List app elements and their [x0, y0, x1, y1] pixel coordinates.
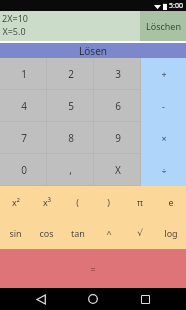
staticText: Lösen — [79, 44, 107, 58]
button[interactable]: 1 — [0, 58, 47, 90]
button[interactable]: Lösen — [0, 43, 186, 58]
button[interactable]: Recent apps — [134, 288, 156, 310]
button[interactable]: Löschen — [140, 11, 186, 41]
button[interactable]: ^ — [93, 217, 124, 249]
staticText: 5 — [68, 99, 74, 113]
staticText: x³ — [43, 196, 51, 208]
button[interactable]: 5 — [47, 90, 94, 122]
staticText: X — [115, 163, 121, 177]
button[interactable]: ( — [62, 186, 93, 217]
staticText: ^ — [106, 227, 112, 239]
staticText: = — [90, 263, 96, 275]
button[interactable]: 7 — [0, 122, 47, 154]
staticText: ) — [107, 196, 110, 208]
staticText: 3 — [115, 67, 121, 81]
staticText: ÷ — [161, 164, 167, 176]
staticText: 9 — [115, 131, 121, 145]
button[interactable]: Back — [30, 288, 52, 310]
button[interactable]: 4 — [0, 90, 47, 122]
staticText: 0 — [21, 163, 27, 177]
button[interactable]: π — [124, 186, 155, 217]
staticText: tan — [71, 227, 85, 239]
staticText: - — [162, 100, 165, 112]
staticText: e — [168, 196, 174, 208]
staticText: X=5.0 — [2, 25, 26, 37]
staticText: log — [164, 227, 178, 239]
button[interactable]: ) — [93, 186, 124, 217]
staticText: π — [137, 196, 143, 208]
button[interactable]: 2 — [47, 58, 94, 90]
staticText: 2 — [68, 67, 74, 81]
staticText: 4 — [21, 99, 27, 113]
button[interactable]: sin — [0, 217, 31, 249]
staticText: 2X=10 — [2, 12, 28, 24]
staticText: √ — [137, 228, 143, 238]
button[interactable]: x² — [0, 186, 31, 217]
button[interactable]: tan — [62, 217, 93, 249]
staticText: ( — [76, 196, 79, 208]
button[interactable]: x³ — [31, 186, 62, 217]
staticText: 6 — [115, 99, 121, 113]
button[interactable]: cos — [31, 217, 62, 249]
staticText: 7 — [21, 131, 27, 145]
button[interactable]: log — [155, 217, 186, 249]
button[interactable]: 6 — [94, 90, 141, 122]
staticText: 5:00 — [169, 1, 183, 11]
button[interactable]: 0 — [0, 154, 47, 186]
button[interactable]: X — [94, 154, 141, 186]
button[interactable]: + — [141, 58, 186, 90]
button[interactable]: - — [141, 90, 186, 122]
staticText: 8 — [68, 131, 74, 145]
staticText: + — [161, 68, 167, 80]
staticText: , — [69, 163, 72, 177]
button[interactable]: × — [141, 122, 186, 154]
button[interactable]: 8 — [47, 122, 94, 154]
staticText: x² — [12, 196, 20, 208]
staticText: sin — [9, 227, 22, 239]
button[interactable]: , — [47, 154, 94, 186]
button[interactable]: e — [155, 186, 186, 217]
button[interactable]: ÷ — [141, 154, 186, 186]
staticText: 1 — [21, 67, 27, 81]
staticText: cos — [39, 227, 54, 239]
staticText: Löschen — [146, 20, 181, 32]
button[interactable]: Home — [82, 288, 104, 310]
staticText: × — [161, 132, 167, 144]
button[interactable]: 3 — [94, 58, 141, 90]
button[interactable]: 9 — [94, 122, 141, 154]
button[interactable]: √ — [124, 217, 155, 249]
